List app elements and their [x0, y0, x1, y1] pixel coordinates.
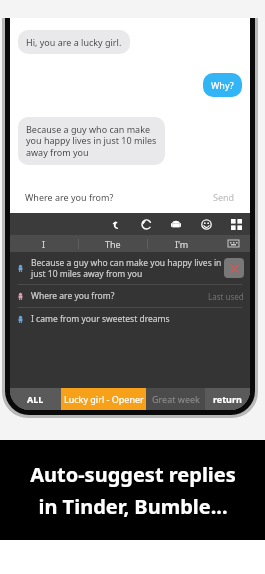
- staticText: Hi, you are a lucky girl.: [26, 36, 122, 48]
- button[interactable]: I came from your sweetest dreams: [10, 308, 250, 330]
- button[interactable]: Great week: [146, 388, 205, 410]
- staticText: The: [105, 238, 121, 250]
- button[interactable]: Lucky girl - Opener: [61, 388, 146, 410]
- staticText: Because a guy who can make you happy liv…: [26, 123, 157, 159]
- staticText: Great week: [152, 393, 200, 405]
- staticText: return: [213, 393, 242, 405]
- button[interactable]: I: [10, 235, 78, 252]
- button[interactable]: Emoji: [198, 216, 214, 232]
- staticText: Lucky girl - Opener: [64, 393, 144, 405]
- staticText: Why?: [211, 79, 234, 91]
- staticText: Where are you from?: [31, 290, 208, 302]
- staticText: ALL: [27, 393, 44, 405]
- staticText: Because a guy who can make you happy liv…: [31, 257, 224, 279]
- staticText: Last used: [208, 291, 244, 302]
- button[interactable]: Undo: [108, 216, 124, 232]
- button[interactable]: Grid: [228, 216, 244, 232]
- staticText: I came from your sweetest dreams: [31, 313, 244, 325]
- button[interactable]: Where are you from?: [17, 184, 243, 210]
- button[interactable]: Hi, you are a lucky girl.: [18, 30, 130, 54]
- button[interactable]: Because a guy who can make you happy liv…: [18, 117, 165, 165]
- button[interactable]: Android: [168, 216, 184, 232]
- staticText: in Tinder, Bumble...: [38, 493, 228, 520]
- button[interactable]: Keyboard: [216, 235, 250, 252]
- staticText: I: [42, 238, 46, 250]
- staticText: Send: [213, 191, 235, 203]
- button[interactable]: Delete: [224, 258, 244, 278]
- staticText: Auto-suggest replies: [30, 461, 236, 488]
- button[interactable]: I'm: [148, 235, 216, 252]
- button[interactable]: The: [79, 235, 147, 252]
- button[interactable]: Where are you from?: [10, 285, 250, 307]
- button[interactable]: Why?: [203, 73, 242, 97]
- staticText: Where are you from?: [25, 191, 114, 203]
- staticText: I'm: [175, 238, 189, 250]
- button[interactable]: return: [205, 388, 250, 410]
- button[interactable]: ALL: [10, 388, 61, 410]
- button[interactable]: Because a guy who can make you happy liv…: [10, 252, 250, 284]
- button[interactable]: History: [138, 216, 154, 232]
